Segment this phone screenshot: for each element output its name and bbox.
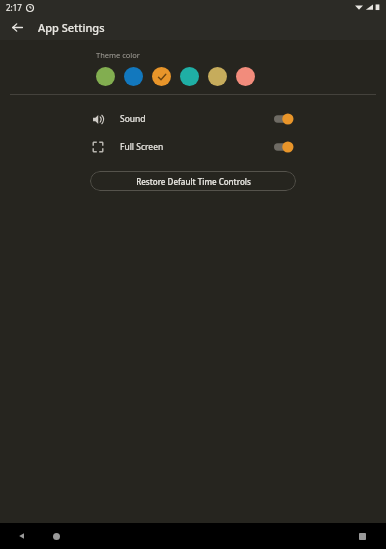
staticText: Sound: [120, 113, 146, 125]
button[interactable]: Theme color 6: [236, 67, 255, 86]
button[interactable]: Full Screen: [90, 137, 296, 157]
button[interactable]: Sound: [90, 109, 296, 129]
button[interactable]: Theme color 2: [124, 67, 143, 86]
button[interactable]: Toggle: [274, 112, 296, 126]
staticText: Full Screen: [120, 141, 164, 153]
staticText: App Settings: [38, 20, 105, 35]
button[interactable]: Recent apps: [352, 526, 372, 546]
button[interactable]: Back: [4, 14, 30, 40]
button[interactable]: Theme color 3: [152, 67, 171, 86]
button[interactable]: Restore Default Time Controls: [90, 171, 296, 191]
staticText: 2:17: [6, 2, 22, 13]
button[interactable]: Back: [12, 526, 32, 546]
button[interactable]: Home: [46, 526, 66, 546]
staticText: Restore Default Time Controls: [136, 176, 251, 187]
button[interactable]: Theme color 1: [96, 67, 115, 86]
staticText: Theme color: [96, 50, 140, 60]
button[interactable]: Theme color 5: [208, 67, 227, 86]
button[interactable]: Toggle: [274, 140, 296, 154]
button[interactable]: Theme color 4: [180, 67, 199, 86]
